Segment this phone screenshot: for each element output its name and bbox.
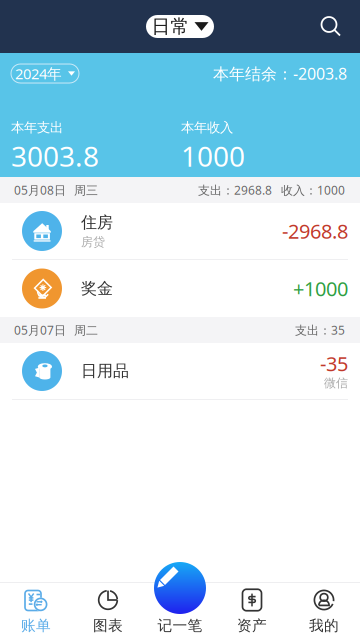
button[interactable]: 图表 (72, 582, 144, 640)
staticText: 1000 (181, 137, 245, 175)
button[interactable]: 资产 (216, 582, 288, 640)
button[interactable]: 2024年 (11, 64, 79, 83)
staticText: 资产 (237, 616, 267, 634)
button[interactable]: 日常 (146, 15, 214, 38)
staticText: 05月08日 周三 (14, 182, 98, 198)
staticText: 住房 (81, 213, 113, 232)
staticText: 本年结余：-2003.8 (213, 63, 347, 84)
staticText: 本年支出 (11, 119, 63, 136)
staticText: -35 (320, 350, 348, 377)
staticText: 图表 (93, 616, 123, 634)
staticText: 支出：2968.8 收入：1000 (198, 182, 345, 198)
staticText: 房贷 (81, 235, 105, 249)
staticText: 奖金 (81, 279, 113, 298)
staticText: 我的 (309, 616, 339, 634)
button[interactable]: 记一笔 (144, 582, 216, 640)
staticText: -2968.8 (282, 218, 348, 244)
staticText: 本年收入 (181, 119, 233, 136)
button[interactable]: 日用品 (0, 343, 360, 400)
staticText: +1000 (293, 275, 348, 302)
staticText: 2024年 (15, 64, 62, 83)
button[interactable]: Search (320, 15, 342, 37)
staticText: 记一笔 (157, 616, 202, 634)
button[interactable]: 记一笔 (154, 562, 206, 614)
button[interactable]: 我的 (288, 582, 360, 640)
staticText: 3003.8 (11, 137, 99, 175)
staticText: 支出：35 (295, 322, 345, 338)
button[interactable]: 账单 (0, 582, 72, 640)
button[interactable]: 住房 (0, 203, 360, 260)
staticText: 日常 (151, 15, 189, 38)
button[interactable]: 奖金 (0, 260, 360, 317)
staticText: 05月07日 周二 (14, 322, 98, 338)
staticText: 微信 (324, 376, 348, 390)
staticText: 日用品 (81, 361, 129, 381)
staticText: 账单 (21, 616, 51, 634)
